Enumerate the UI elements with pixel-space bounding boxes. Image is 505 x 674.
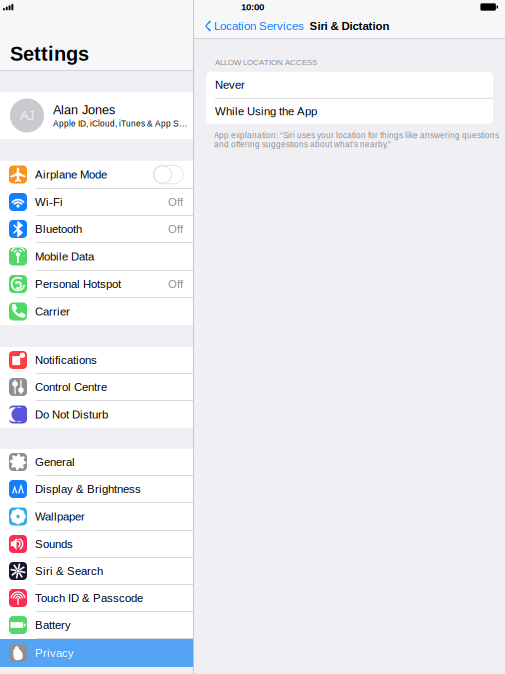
staticText: Siri & Dictation <box>309 20 389 32</box>
staticText: Control Centre <box>35 381 107 393</box>
button[interactable]: Airplane Mode <box>0 161 193 189</box>
button[interactable]: Battery <box>0 612 193 639</box>
staticText: Off <box>168 278 183 290</box>
staticText: Touch ID & Passcode <box>35 592 143 604</box>
staticText: App explanation: “Siri uses your locatio… <box>214 131 499 149</box>
staticText: Privacy <box>35 647 74 659</box>
staticText: Apple ID, iCloud, iTunes & App St… <box>53 119 187 128</box>
staticText: 10:00 <box>241 2 264 12</box>
staticText: Airplane Mode <box>35 168 107 181</box>
staticText: Siri & Search <box>35 565 103 577</box>
staticText: Wi-Fi <box>35 196 63 208</box>
button[interactable]: Bluetooth <box>0 216 193 243</box>
staticText: Alan Jones <box>53 103 115 117</box>
staticText: Notifications <box>35 354 97 366</box>
button[interactable]: Location Services <box>194 14 310 38</box>
button[interactable]: Display & Brightness <box>0 476 193 503</box>
staticText: Location Services <box>214 20 304 32</box>
button[interactable]: Siri & Search <box>0 558 193 585</box>
staticText: General <box>35 456 75 468</box>
staticText: Mobile Data <box>35 250 94 263</box>
button[interactable]: Mobile Data <box>0 243 193 271</box>
staticText: While Using the App <box>215 105 317 118</box>
button[interactable]: While Using the App <box>206 99 493 124</box>
staticText: Personal Hotspot <box>35 278 121 290</box>
staticText: Off <box>168 223 183 235</box>
button[interactable]: Carrier <box>0 298 193 325</box>
staticText: Carrier <box>35 305 70 318</box>
staticText: Bluetooth <box>35 223 82 235</box>
staticText: Display & Brightness <box>35 483 141 495</box>
button[interactable]: Do Not Disturb <box>0 401 193 428</box>
button[interactable]: Wallpaper <box>0 503 193 531</box>
button[interactable]: Notifications <box>0 347 193 374</box>
button[interactable]: Never <box>206 72 493 98</box>
staticText: Sounds <box>35 538 73 550</box>
staticText: Wallpaper <box>35 510 85 523</box>
button[interactable]: General <box>0 449 193 476</box>
staticText: ALLOW LOCATION ACCESS <box>215 58 317 67</box>
staticText: Battery <box>35 619 71 631</box>
button[interactable]: Touch ID & Passcode <box>0 585 193 612</box>
staticText: Settings <box>10 43 89 65</box>
staticText: Never <box>215 78 245 91</box>
button[interactable]: AJ <box>0 92 193 139</box>
staticText: Off <box>168 196 183 208</box>
button[interactable]: Control Centre <box>0 374 193 401</box>
staticText: AJ <box>20 108 34 123</box>
button[interactable]: Privacy <box>0 639 193 667</box>
button[interactable]: Sounds <box>0 531 193 558</box>
button[interactable]: Wi-Fi <box>0 189 193 216</box>
staticText: Do Not Disturb <box>35 408 108 421</box>
button[interactable]: Personal Hotspot <box>0 271 193 298</box>
